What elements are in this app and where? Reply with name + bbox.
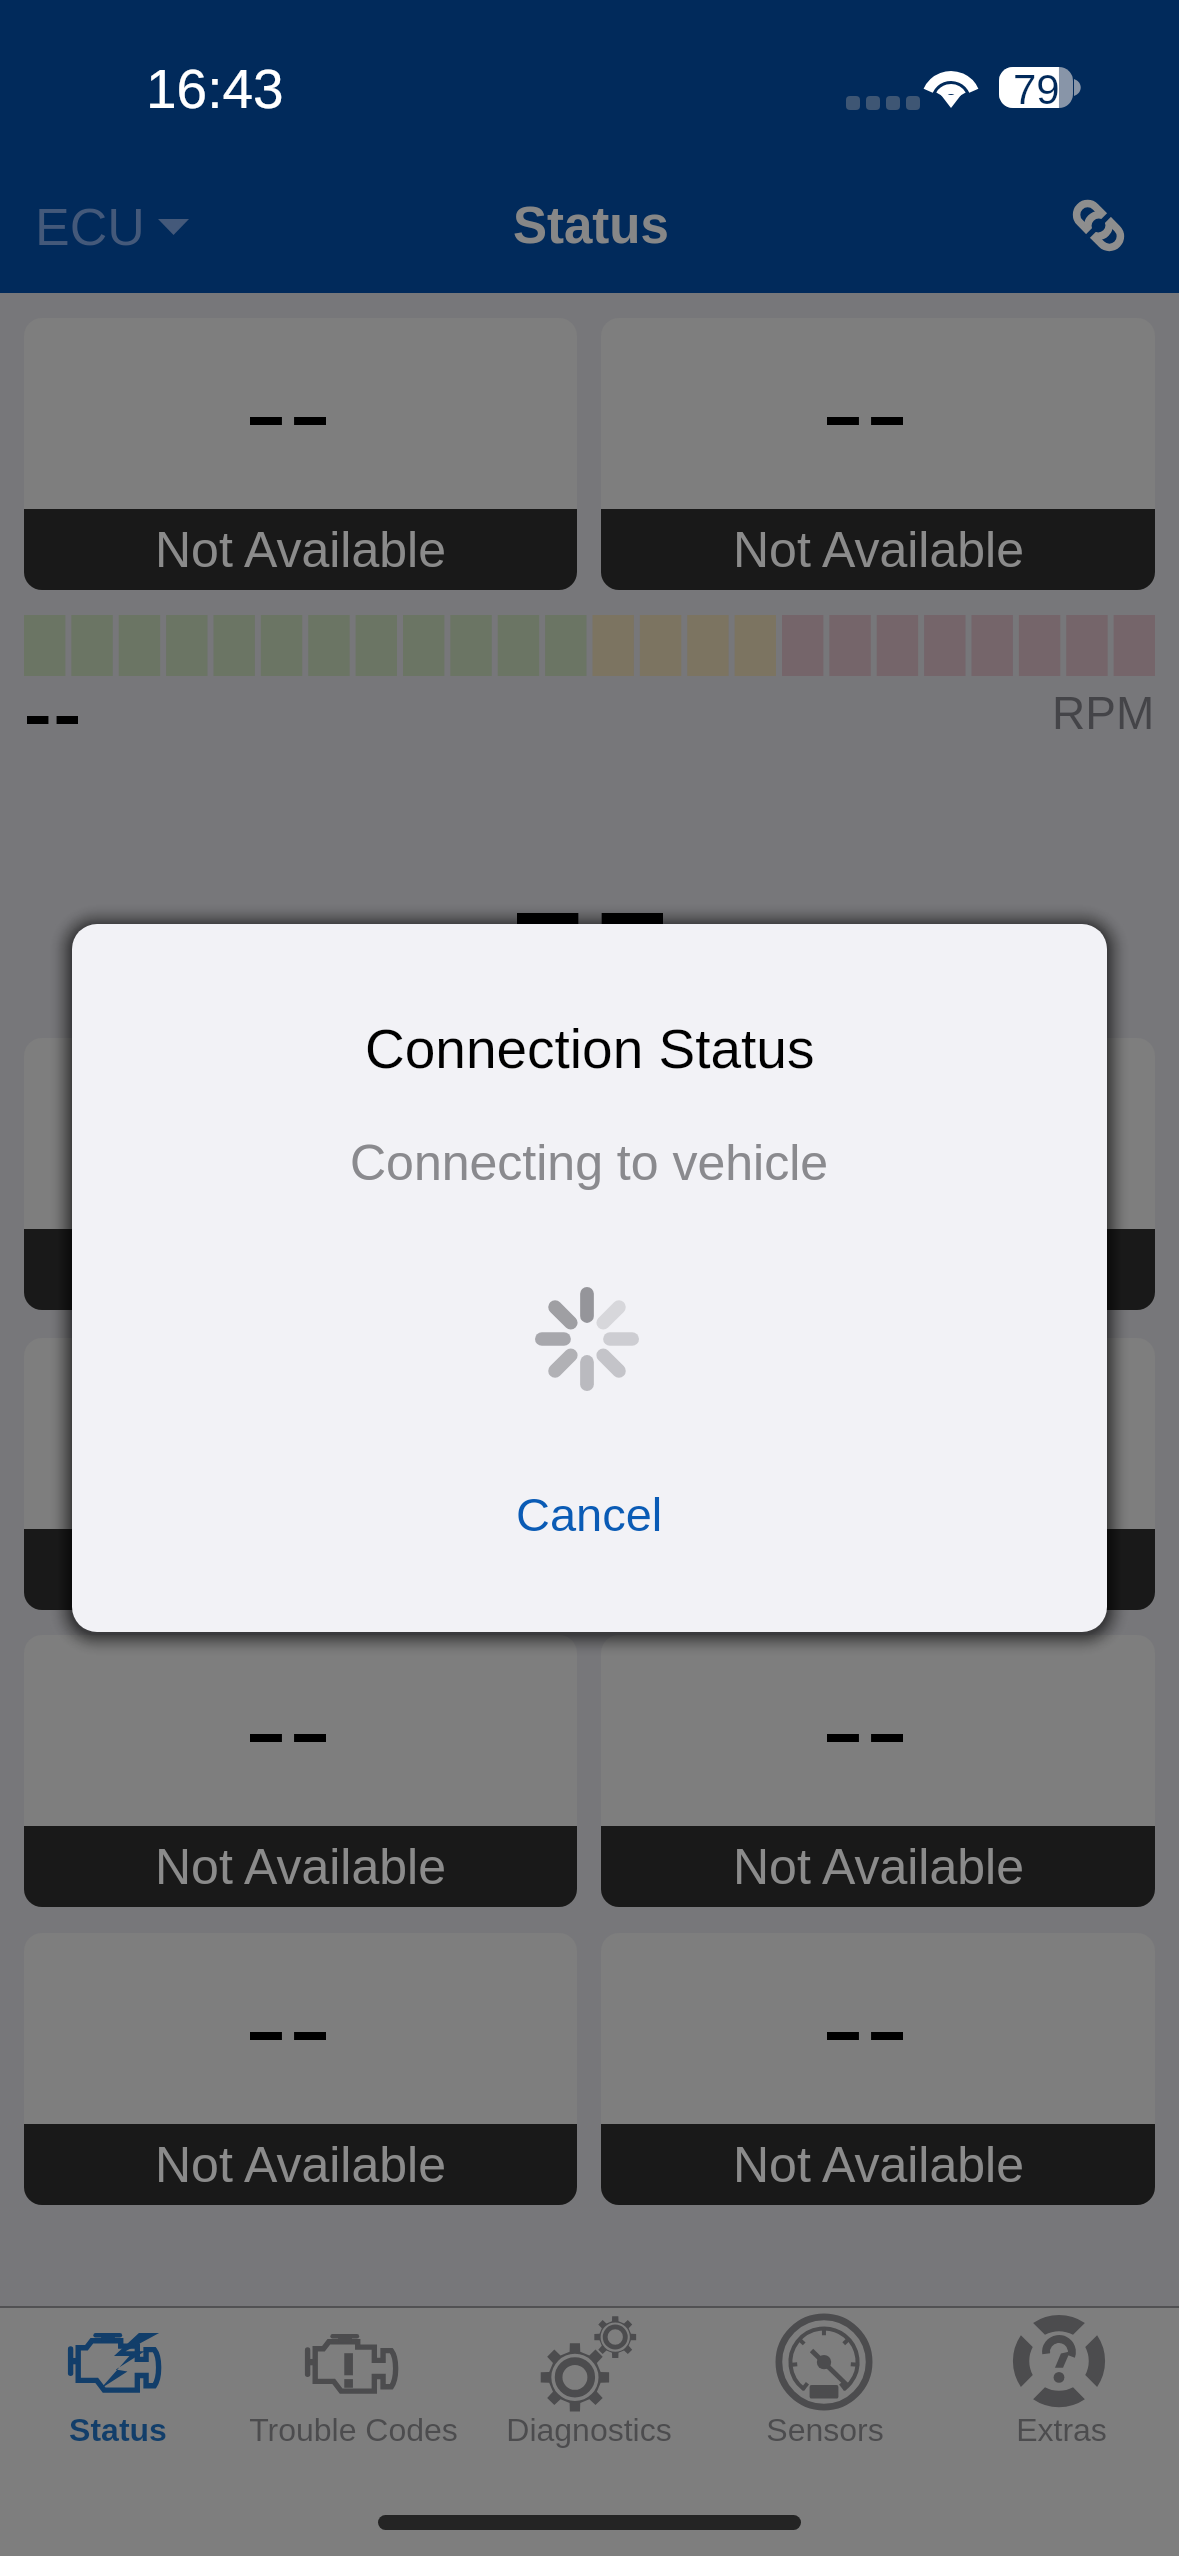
staticText: Sensors (766, 2412, 884, 2448)
button[interactable]: Not Available (24, 1933, 577, 2205)
button[interactable] (24, 785, 1155, 1057)
button[interactable]: Not Available (601, 1338, 1155, 1610)
button[interactable]: Diagnostics (471, 2308, 707, 2458)
staticText: ECU (35, 198, 145, 256)
button[interactable]: Not Available (24, 318, 577, 590)
staticText: 79 (1013, 66, 1060, 113)
button[interactable]: Status (0, 2308, 235, 2458)
button[interactable]: Not Available (601, 1635, 1155, 1907)
staticText: RPM (1052, 687, 1155, 738)
staticText: Not Available (155, 2137, 446, 2193)
button[interactable]: Cancel (72, 1456, 1107, 1632)
staticText: Not Available (155, 522, 446, 578)
button[interactable]: Not Available (601, 318, 1155, 590)
staticText: Diagnostics (506, 2412, 672, 2448)
staticText: Not Available (733, 1839, 1024, 1895)
button[interactable]: Sensors (707, 2308, 943, 2458)
staticText: Connection Status (365, 1018, 815, 1079)
button[interactable]: Extras (943, 2308, 1179, 2458)
staticText: Extras (1016, 2412, 1107, 2448)
staticText: Status (513, 197, 669, 254)
button[interactable]: Not Available (601, 1933, 1155, 2205)
button[interactable]: Not Available (24, 1635, 577, 1907)
button[interactable]: Connect to vehicle (1048, 175, 1148, 275)
staticText: 16:43 (146, 58, 284, 119)
button[interactable]: Not Available (24, 1038, 577, 1310)
button[interactable]: ECU (20, 180, 204, 274)
staticText: Not Available (733, 2137, 1024, 2193)
staticText: Trouble Codes (249, 2412, 458, 2448)
button[interactable]: Trouble Codes (235, 2308, 471, 2458)
button[interactable]: Not Available (601, 1038, 1155, 1310)
staticText: Cancel (516, 1488, 663, 1541)
staticText: Not Available (155, 1839, 446, 1895)
staticText: Not Available (733, 522, 1024, 578)
button[interactable]: Not Available (24, 1338, 577, 1610)
staticText: Status (69, 2412, 167, 2448)
staticText: Connecting to vehicle (350, 1135, 829, 1191)
